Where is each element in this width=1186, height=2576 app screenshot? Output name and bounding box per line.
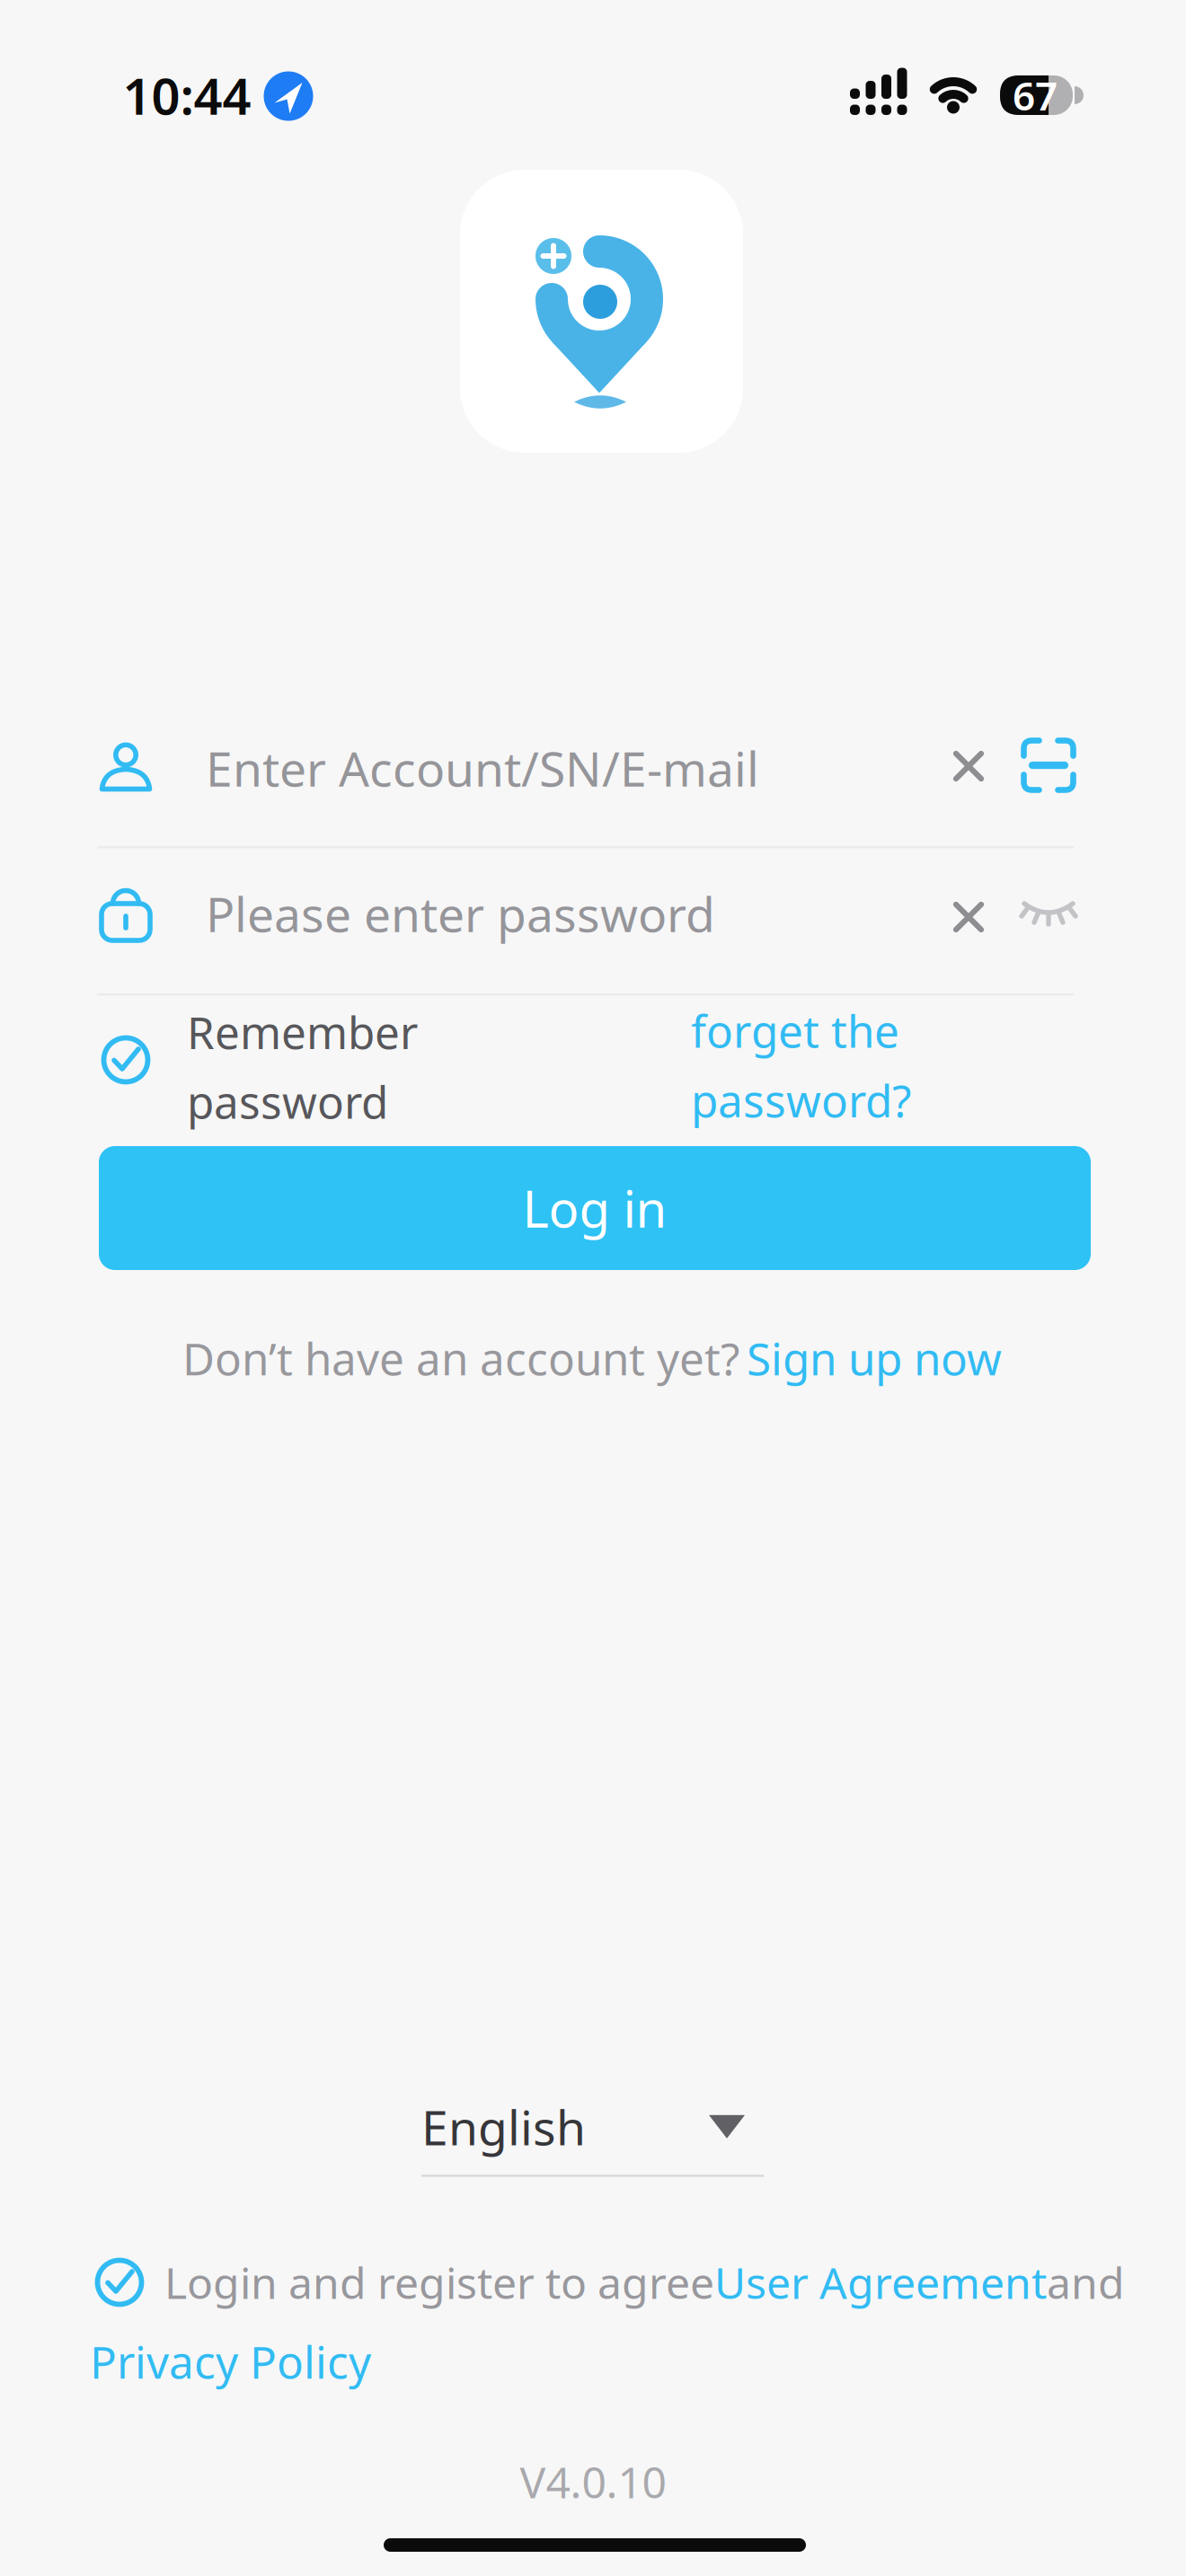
- button[interactable]: Log in: [99, 1146, 1091, 1270]
- staticText: 67: [1013, 69, 1058, 121]
- staticText: V4.0.10: [520, 2453, 666, 2510]
- button[interactable]: Show password: [1011, 875, 1086, 950]
- button[interactable]: Clear account: [936, 734, 1001, 798]
- button[interactable]: Please enter password: [93, 860, 938, 967]
- staticText: Login and register to agree: [164, 2254, 714, 2311]
- staticText: Privacy Policy: [90, 2332, 371, 2391]
- button[interactable]: English: [421, 2095, 764, 2177]
- button[interactable]: Privacy Policy: [90, 2332, 371, 2391]
- button[interactable]: Enter Account/SN/E-mail: [93, 714, 938, 822]
- staticText: Please enter password: [206, 882, 715, 945]
- button[interactable]: Sign up now: [747, 1329, 1002, 1387]
- staticText: Remember password: [187, 1002, 418, 1131]
- staticText: Sign up now: [747, 1329, 1002, 1387]
- button[interactable]: User Agreement: [714, 2254, 1047, 2311]
- staticText: User Agreement: [714, 2254, 1047, 2311]
- button[interactable]: Remember password: [93, 1001, 474, 1132]
- button[interactable]: Agree to terms: [87, 2250, 152, 2315]
- staticText: Log in: [522, 1175, 667, 1241]
- staticText: Don’t have an account yet?: [182, 1329, 739, 1387]
- staticText: Enter Account/SN/E-mail: [206, 736, 759, 800]
- button[interactable]: Scan SN code: [1011, 728, 1086, 803]
- staticText: 10:44: [123, 62, 251, 129]
- staticText: English: [421, 2095, 586, 2159]
- button[interactable]: forget the password?: [691, 1001, 969, 1129]
- button[interactable]: Clear password: [936, 885, 1001, 949]
- staticText: and: [1047, 2254, 1125, 2311]
- staticText: forget the password?: [691, 1001, 911, 1129]
